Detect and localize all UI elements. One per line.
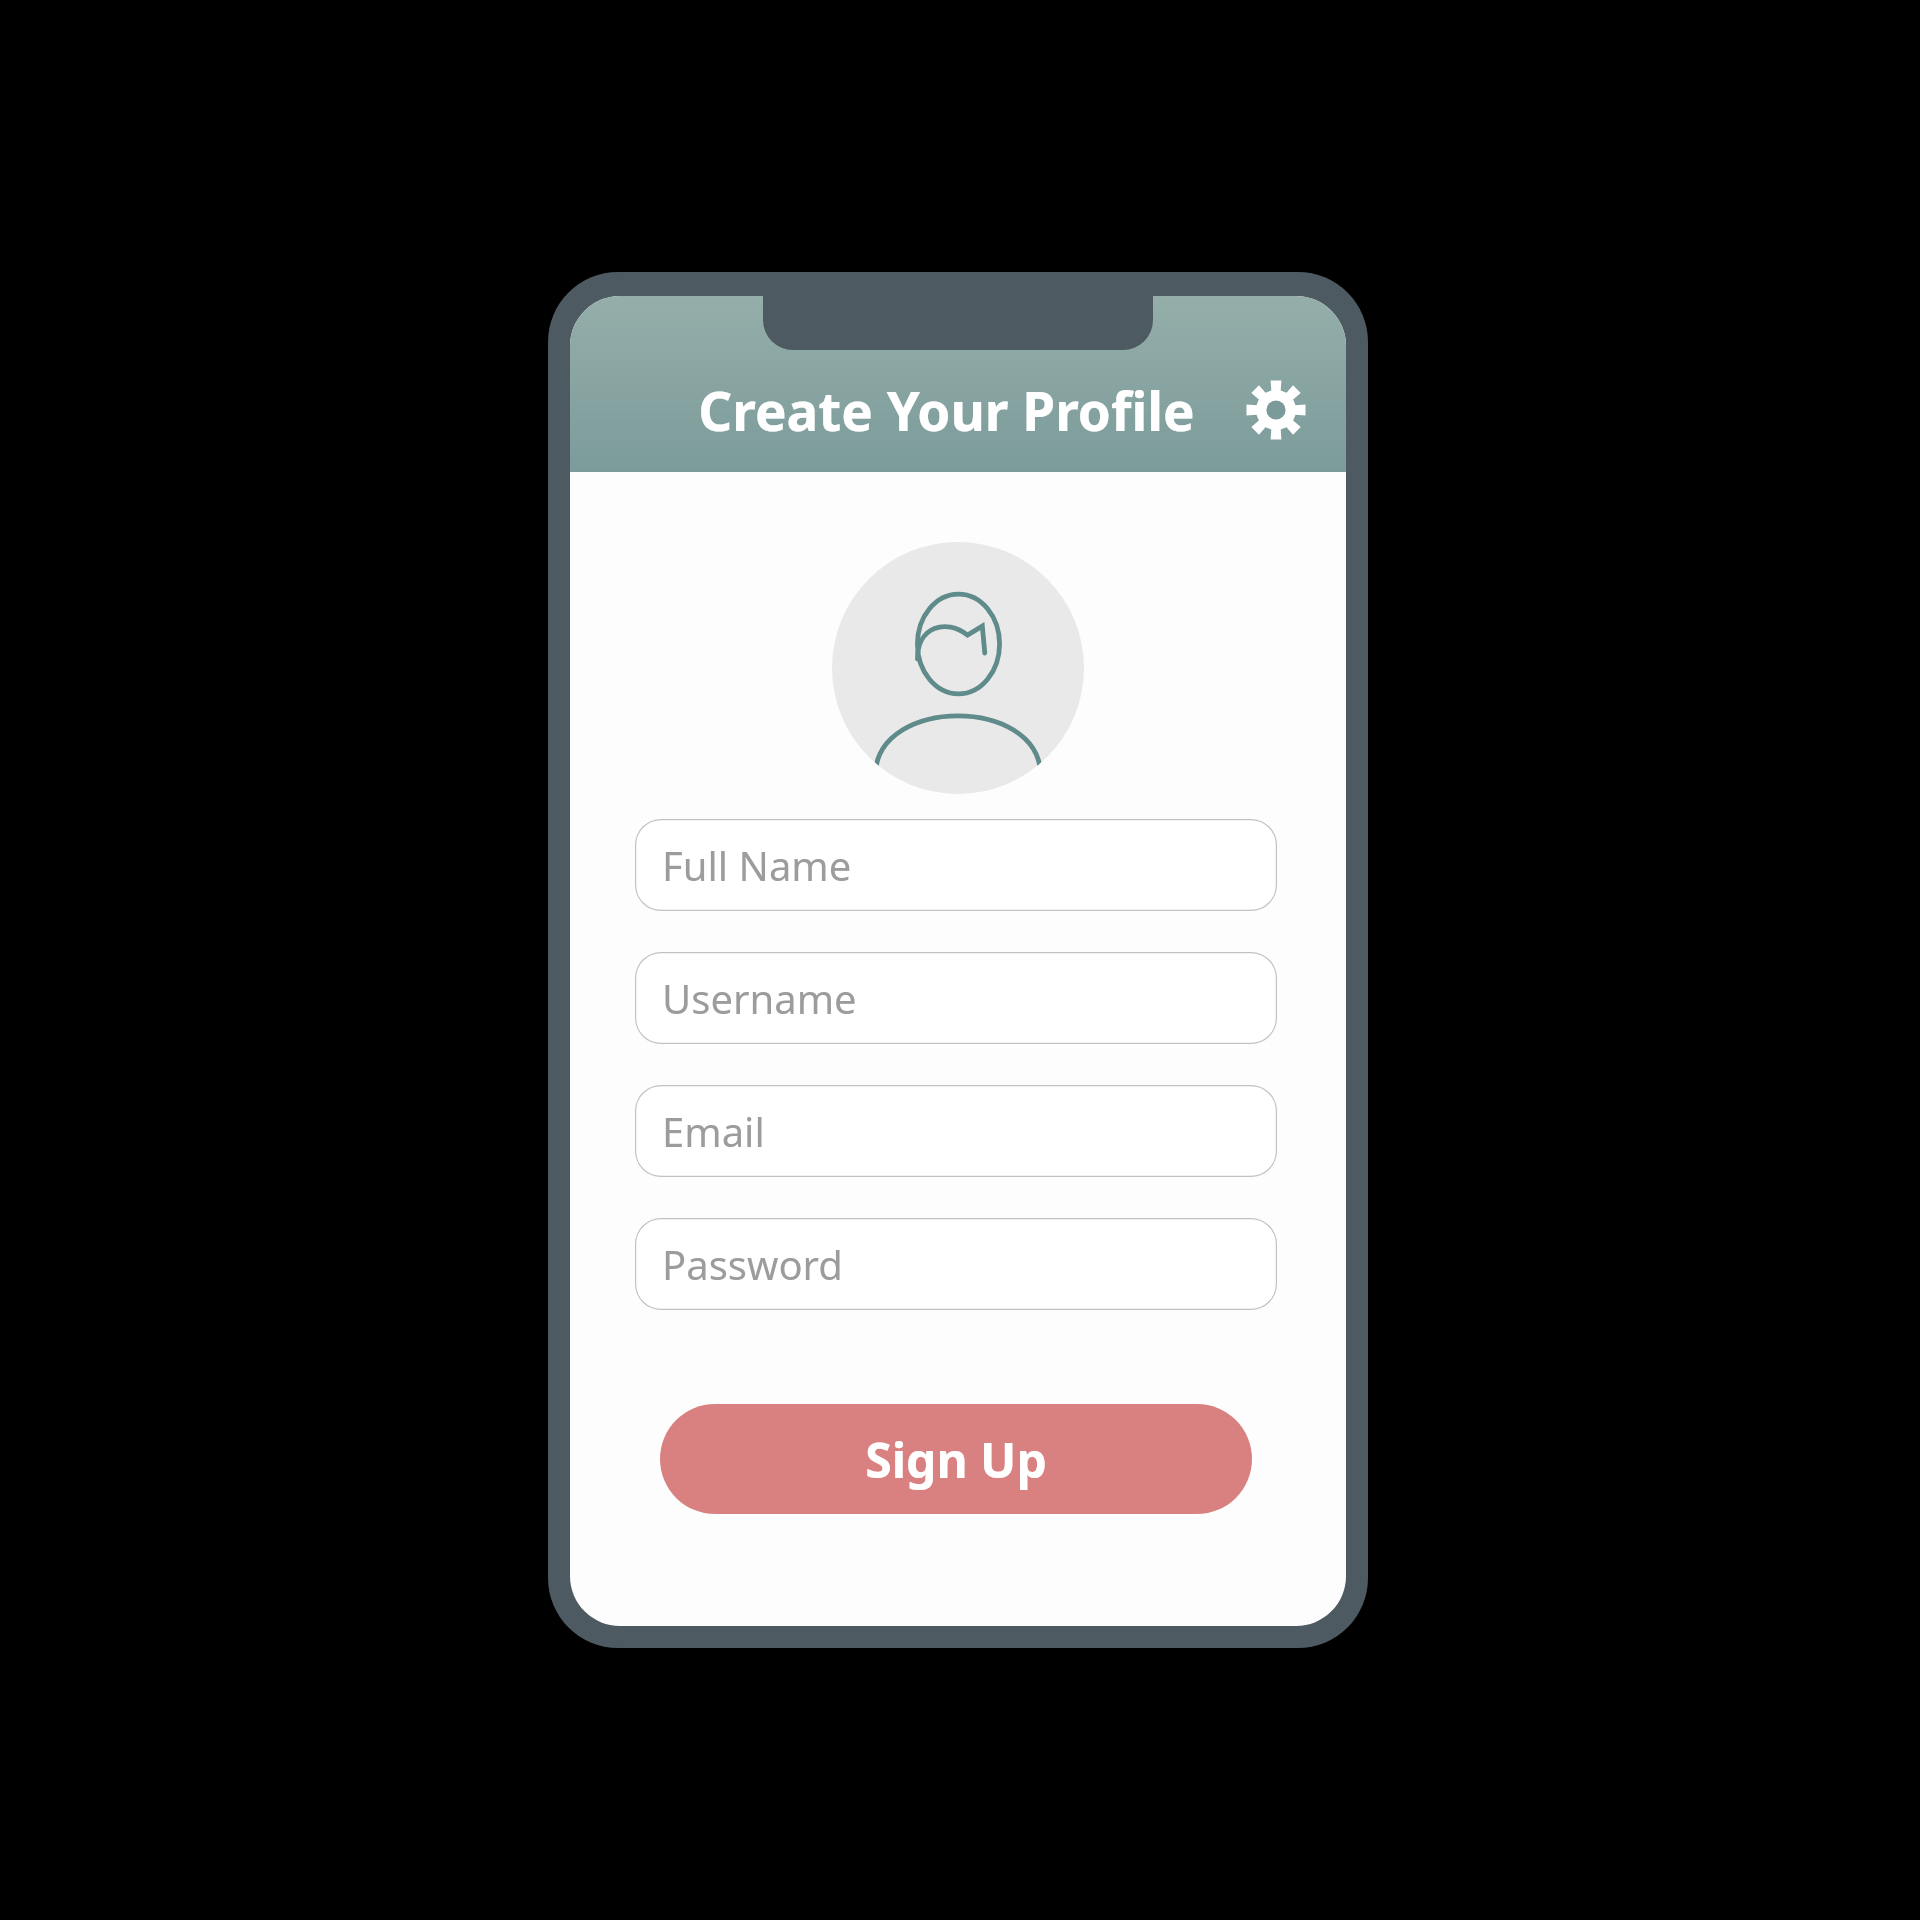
button[interactable]: Profile photo <box>832 542 1084 794</box>
button[interactable]: Email <box>635 1085 1277 1177</box>
staticText: Full Name <box>662 838 852 892</box>
button[interactable]: Settings <box>1236 370 1316 450</box>
button[interactable]: Full Name <box>635 819 1277 911</box>
button[interactable]: Username <box>635 952 1277 1044</box>
staticText: Password <box>662 1237 843 1291</box>
staticText: Sign Up <box>865 1427 1047 1492</box>
staticText: Create Your Profile <box>698 374 1195 446</box>
staticText: Username <box>662 971 857 1025</box>
button[interactable]: Sign Up <box>660 1404 1252 1514</box>
button[interactable]: Password <box>635 1218 1277 1310</box>
staticText: Email <box>662 1104 765 1158</box>
